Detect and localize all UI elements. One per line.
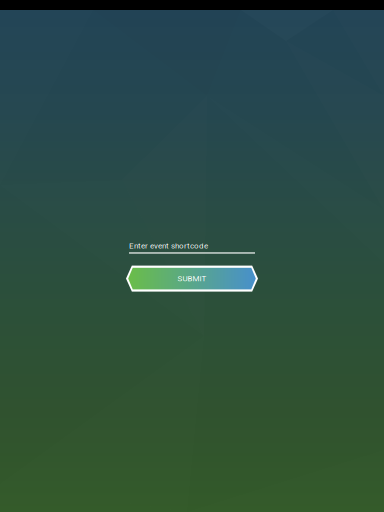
button[interactable]: Enter event shortcode: [129, 241, 255, 254]
staticText: SUBMIT: [177, 274, 206, 283]
button[interactable]: SUBMIT: [126, 266, 258, 292]
staticText: Enter event shortcode: [129, 241, 208, 250]
